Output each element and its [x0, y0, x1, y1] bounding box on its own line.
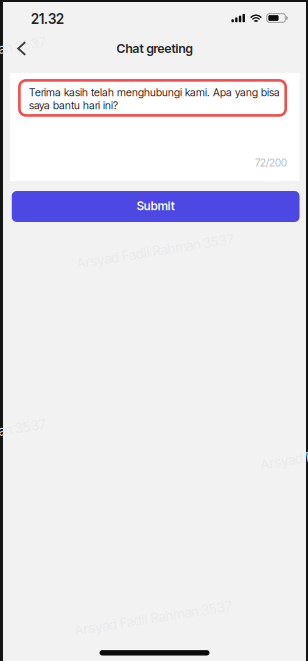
staticText: 21.32	[31, 11, 64, 27]
button[interactable]: Back	[7, 37, 37, 59]
staticText: Chat greeting	[116, 41, 192, 56]
staticText: 72/200	[255, 156, 287, 169]
button[interactable]: Submit	[12, 191, 299, 222]
staticText: Arsyad Fadli Rahman 3537	[0, 428, 46, 444]
staticText: Arsyad Fadli Rahman 3537	[0, 46, 46, 62]
staticText: Terima kasih telah menghubungi kami. Apa…	[29, 86, 280, 112]
staticText: Submit	[137, 199, 175, 213]
staticText: Arsyad Fadli Rahman 3537	[259, 444, 308, 460]
